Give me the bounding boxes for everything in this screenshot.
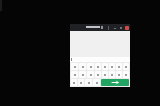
button[interactable]: Key: [109, 71, 115, 78]
button[interactable]: Key: [116, 63, 122, 70]
button[interactable]: Key: [85, 79, 92, 86]
button[interactable]: Key: [87, 63, 94, 70]
button[interactable]: Key: [95, 71, 101, 78]
button[interactable]: Key: [116, 71, 122, 78]
button[interactable]: Key: [123, 71, 129, 78]
button[interactable]: Close: [125, 26, 129, 30]
button[interactable]: Key: [102, 63, 108, 70]
button[interactable]: Key: [93, 79, 100, 86]
button[interactable]: Key: [79, 63, 86, 70]
button[interactable]: Key: [71, 79, 77, 86]
button[interactable]: Key: [71, 71, 78, 78]
button[interactable]: Minimize: [113, 26, 117, 30]
button[interactable]: Key: [109, 63, 115, 70]
button[interactable]: Key: [71, 63, 78, 70]
button[interactable]: Maximize: [119, 26, 123, 30]
button[interactable]: Key: [87, 71, 94, 78]
button[interactable]: Key: [95, 63, 101, 70]
button[interactable]: Key: [79, 71, 86, 78]
button[interactable]: Key: [102, 71, 108, 78]
button[interactable]: Key: [123, 63, 129, 70]
button[interactable]: Enter: [101, 79, 129, 86]
button[interactable]: Key: [78, 79, 84, 86]
